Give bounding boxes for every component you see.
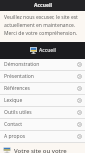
button[interactable]: Votre site ou votre magasin en ligne <box>0 143 85 153</box>
staticText: Références <box>4 85 30 92</box>
staticText: Accueil <box>39 47 56 54</box>
staticText: A propos <box>4 133 26 140</box>
button[interactable]: A propos <box>0 131 85 142</box>
staticText: actuellement en maintenance. <box>4 22 76 29</box>
staticText: Lexique <box>4 97 23 104</box>
staticText: Merci de votre compréhension. <box>4 30 78 37</box>
staticText: Outils utiles <box>4 109 32 116</box>
button[interactable]: Accueil <box>0 42 85 59</box>
button[interactable]: Contact <box>0 119 85 130</box>
staticText: Veuillez nous excuser, le site est <box>4 14 78 21</box>
staticText: Accueil <box>34 2 52 9</box>
staticText: Présentation <box>4 73 34 80</box>
button[interactable]: Outils utiles <box>0 107 85 118</box>
button[interactable]: Démonstration <box>0 59 85 70</box>
button[interactable]: Références <box>0 83 85 94</box>
staticText: Démonstration <box>4 61 40 68</box>
button[interactable]: Présentation <box>0 71 85 82</box>
staticText: Votre site ou votre magasin en ligne <box>14 147 82 153</box>
staticText: Contact <box>4 121 23 128</box>
button[interactable]: Lexique <box>0 95 85 106</box>
